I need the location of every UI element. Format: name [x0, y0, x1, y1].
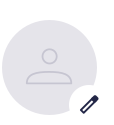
button[interactable]: Edit profile photo [69, 85, 109, 125]
